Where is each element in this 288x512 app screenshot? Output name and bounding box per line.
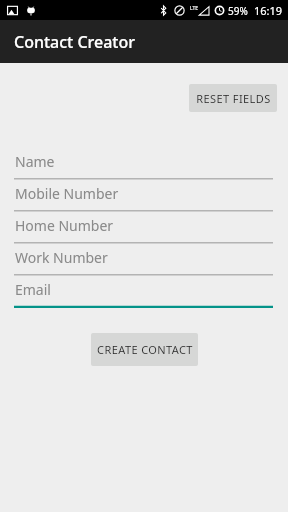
button[interactable]: Mobile Number [0,180,288,212]
staticText: LTE [190,5,199,12]
button[interactable]: RESET FIELDS [189,84,277,112]
staticText: Email [15,280,51,299]
staticText: RESET FIELDS [196,91,271,106]
staticText: CREATE CONTACT [97,342,193,357]
button[interactable]: Name [0,148,288,180]
staticText: Mobile Number [15,184,119,203]
staticText: Work Number [15,248,108,267]
button[interactable]: Work Number [0,244,288,276]
staticText: Contact Creator [14,31,136,53]
staticText: Home Number [15,216,114,235]
button[interactable]: Email [0,276,288,308]
staticText: 16:19 [254,3,283,18]
button[interactable]: Home Number [0,212,288,244]
staticText: 59% [228,4,248,18]
staticText: Name [15,152,55,171]
button[interactable]: CREATE CONTACT [91,333,198,366]
